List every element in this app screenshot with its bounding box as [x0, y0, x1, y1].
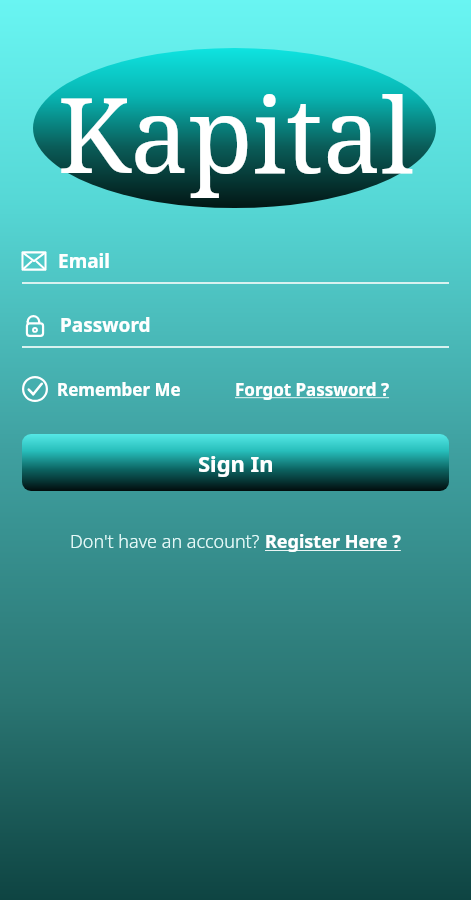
- staticText: Forgot Password ?: [235, 378, 390, 401]
- button[interactable]: Password: [22, 304, 449, 346]
- other: Remember Me: [22, 376, 48, 402]
- other: Password: [22, 312, 48, 338]
- staticText: Kapital: [0, 62, 471, 204]
- button[interactable]: Forgot Password ?: [235, 374, 390, 405]
- staticText: Sign In: [198, 448, 274, 478]
- button[interactable]: Remember Me: [22, 372, 181, 406]
- staticText: Remember Me: [57, 378, 181, 401]
- staticText: Don't have an account?: [70, 529, 265, 554]
- staticText: Register Here ?: [265, 529, 401, 554]
- staticText: Password: [60, 312, 151, 338]
- button[interactable]: Sign In: [22, 434, 449, 491]
- other: Email: [22, 249, 46, 273]
- button[interactable]: Email: [22, 240, 449, 282]
- button[interactable]: Register Here ?: [265, 529, 401, 554]
- staticText: Email: [58, 248, 110, 274]
